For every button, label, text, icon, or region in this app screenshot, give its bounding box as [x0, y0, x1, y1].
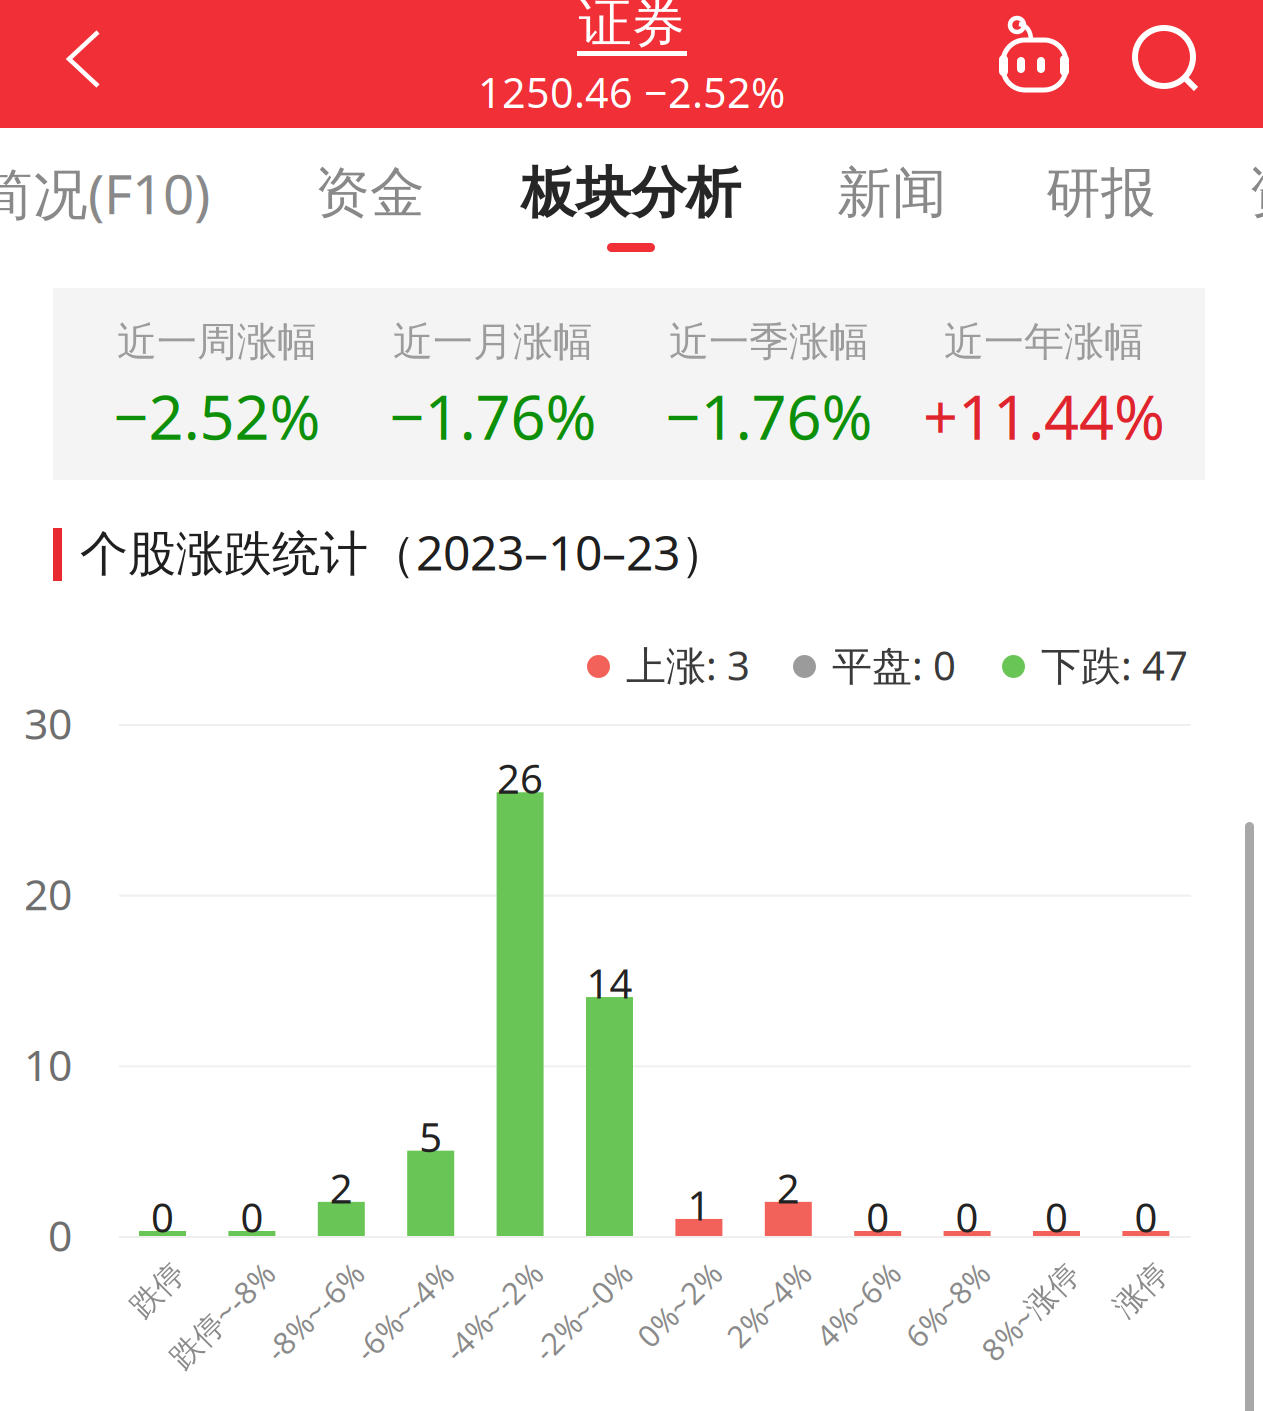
- staticText: 0: [866, 1190, 889, 1244]
- staticText: 证券: [578, 0, 684, 57]
- staticText: 8%~涨停: [950, 1247, 1073, 1289]
- staticText: 资: [1248, 159, 1263, 227]
- staticText: 近一周涨幅: [117, 317, 317, 367]
- staticText: 板块分析: [521, 159, 741, 227]
- staticText: 1250.46 −2.52%: [478, 64, 785, 120]
- staticText: 上涨: 3: [626, 638, 750, 692]
- staticText: 近一月涨幅: [393, 317, 593, 367]
- staticText: 下跌: 47: [1041, 638, 1188, 692]
- staticText: 0: [151, 1190, 174, 1244]
- button[interactable]: 新闻: [812, 150, 972, 236]
- staticText: 0: [1045, 1190, 1068, 1244]
- staticText: 资金: [315, 159, 425, 227]
- button[interactable]: 板块分析: [501, 150, 761, 260]
- staticText: 10: [24, 1035, 72, 1093]
- staticText: 近一年涨幅: [944, 317, 1144, 367]
- staticText: 0: [956, 1190, 979, 1244]
- staticText: 0: [1134, 1190, 1157, 1244]
- staticText: 跌停: [117, 1249, 179, 1287]
- button[interactable]: 资金: [290, 150, 450, 236]
- staticText: 跌停~-8%: [136, 1247, 269, 1289]
- staticText: 0: [240, 1190, 263, 1244]
- staticText: −2.52%: [113, 374, 320, 458]
- staticText: 0%~2%: [612, 1247, 716, 1289]
- button[interactable]: Search: [1115, 0, 1243, 130]
- staticText: 2: [777, 1161, 800, 1215]
- staticText: 研报: [1046, 159, 1156, 227]
- button[interactable]: 研报: [1021, 150, 1181, 236]
- staticText: 6%~8%: [880, 1247, 984, 1289]
- staticText: -2%~-0%: [502, 1247, 626, 1289]
- staticText: 2: [330, 1161, 353, 1215]
- button[interactable]: Back: [0, 0, 130, 130]
- staticText: 2%~4%: [701, 1247, 805, 1289]
- staticText: 近一季涨幅: [669, 317, 869, 367]
- staticText: 新闻: [837, 159, 947, 227]
- staticText: -8%~-6%: [234, 1247, 358, 1289]
- staticText: 5: [419, 1109, 442, 1164]
- staticText: 26: [497, 751, 543, 805]
- staticText: 涨停: [1101, 1249, 1163, 1287]
- button[interactable]: AI assistant: [985, 0, 1105, 130]
- staticText: -4%~-2%: [413, 1247, 537, 1289]
- staticText: 20: [24, 865, 72, 923]
- staticText: −1.76%: [665, 374, 872, 458]
- staticText: −1.76%: [389, 374, 596, 458]
- button[interactable]: 简况(F10): [0, 150, 238, 236]
- staticText: +11.44%: [923, 374, 1165, 458]
- staticText: 14: [586, 956, 632, 1010]
- staticText: 1: [687, 1178, 710, 1232]
- staticText: 平盘: 0: [832, 638, 956, 692]
- staticText: 30: [24, 694, 72, 752]
- staticText: 简况(F10): [0, 156, 210, 230]
- staticText: 0: [48, 1206, 72, 1264]
- staticText: -6%~-4%: [324, 1247, 448, 1289]
- staticText: 4%~6%: [791, 1247, 895, 1289]
- staticText: 个股涨跌统计（2023–10–23）: [80, 519, 728, 585]
